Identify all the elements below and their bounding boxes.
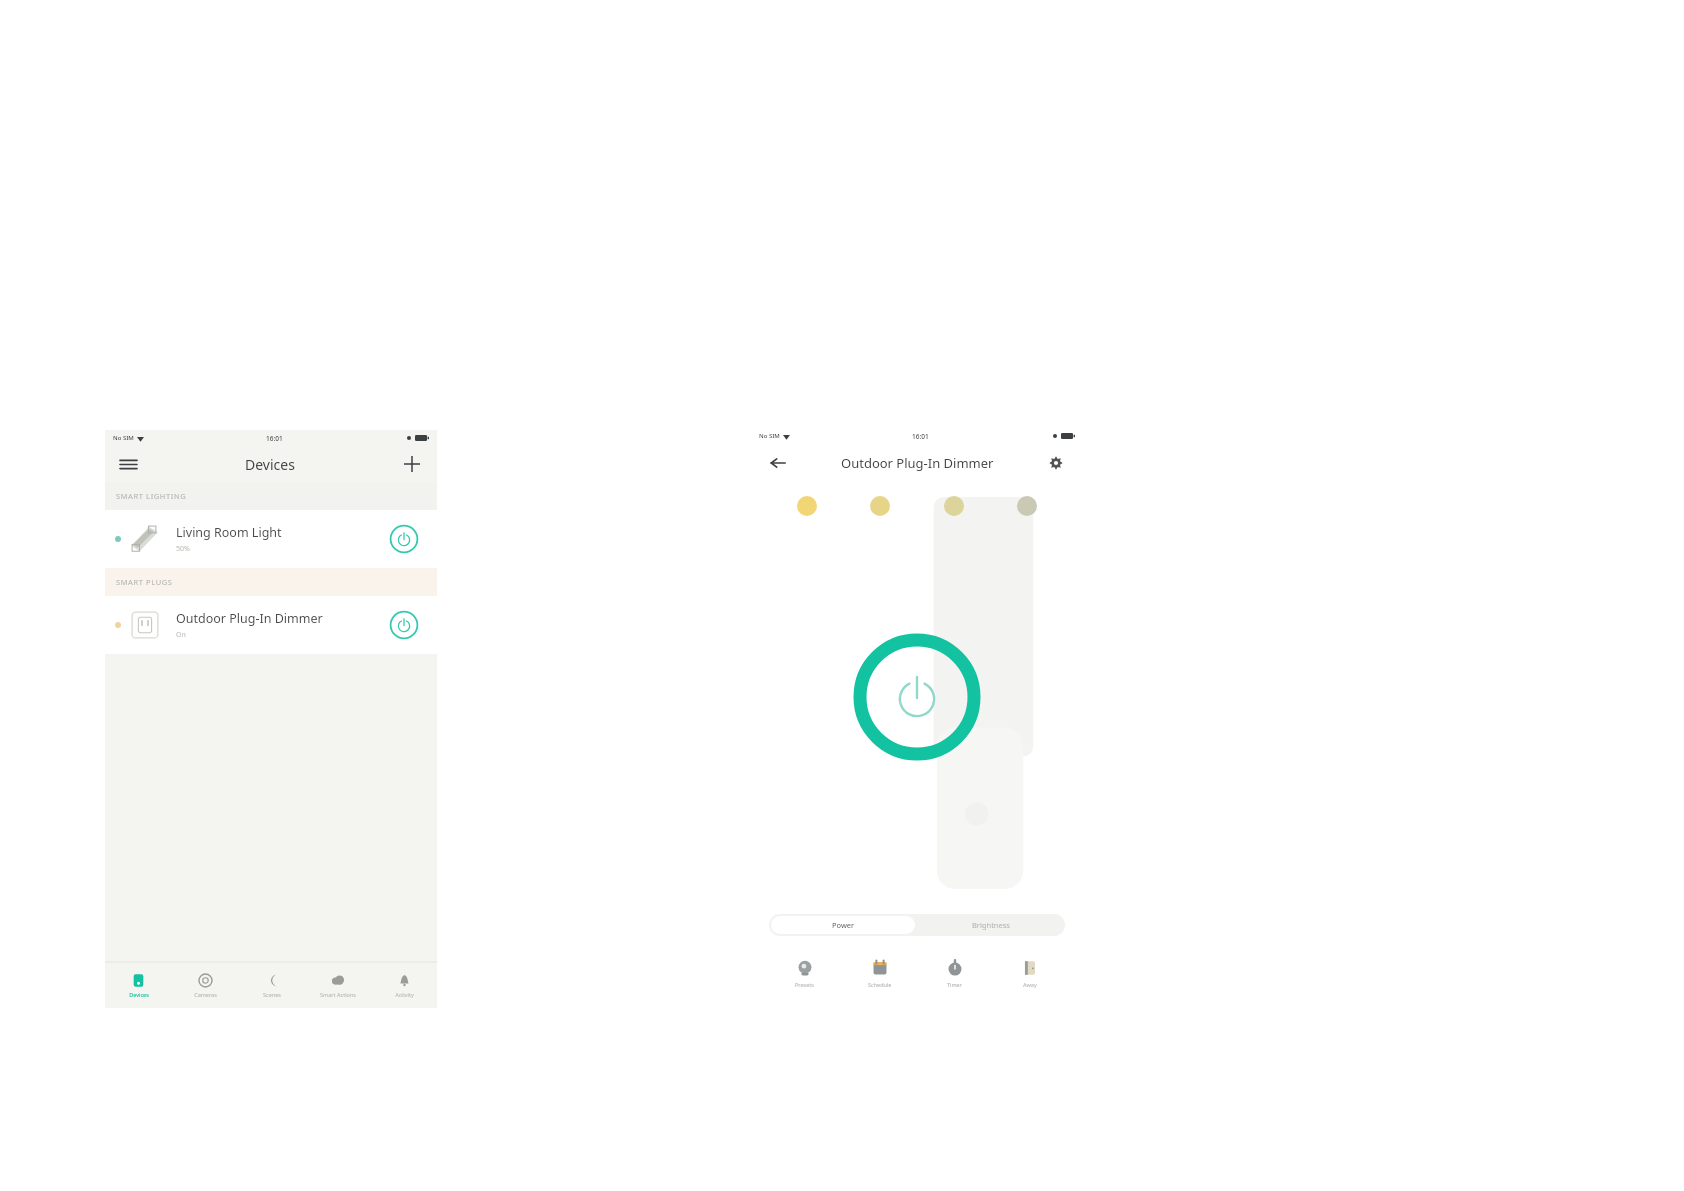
- staticText: Scenes: [263, 991, 281, 998]
- staticText: Devices: [245, 455, 295, 474]
- staticText: Cameras: [194, 991, 217, 998]
- button[interactable]: Timer: [917, 950, 992, 996]
- button[interactable]: Add device: [397, 449, 427, 479]
- staticText: 50%: [176, 544, 190, 554]
- staticText: Timer: [947, 981, 962, 988]
- staticText: Schedule: [868, 981, 892, 988]
- staticText: No SIM: [113, 434, 134, 442]
- button[interactable]: Outdoor Plug-In Dimmer: [105, 596, 437, 654]
- button[interactable]: Scenes: [239, 962, 305, 1008]
- button[interactable]: Menu: [113, 449, 143, 479]
- staticText: Brightness: [972, 920, 1010, 930]
- button[interactable]: Settings: [1041, 448, 1071, 478]
- staticText: Presets: [795, 981, 814, 988]
- staticText: 16:01: [266, 434, 283, 443]
- button[interactable]: Living Room Light: [105, 510, 437, 568]
- button[interactable]: Power: [853, 633, 981, 761]
- button[interactable]: Smart Actions: [305, 962, 371, 1008]
- button[interactable]: Devices: [105, 962, 172, 1008]
- button[interactable]: Presets: [767, 950, 842, 996]
- staticText: Away: [1023, 981, 1037, 988]
- staticText: Activity: [395, 991, 414, 998]
- staticText: On: [176, 630, 186, 640]
- button[interactable]: Brightness: [917, 914, 1065, 936]
- staticText: 16:01: [912, 432, 929, 441]
- staticText: Power: [832, 920, 855, 930]
- staticText: SMART PLUGS: [116, 577, 173, 587]
- button[interactable]: Schedule: [842, 950, 917, 996]
- staticText: Devices: [129, 991, 149, 998]
- staticText: Outdoor Plug-In Dimmer: [841, 454, 994, 472]
- staticText: No SIM: [759, 432, 780, 440]
- button[interactable]: Toggle Living Room Light: [387, 522, 421, 556]
- button[interactable]: Away: [992, 950, 1067, 996]
- staticText: SMART LIGHTING: [116, 491, 187, 501]
- staticText: Living Room Light: [176, 524, 282, 541]
- button[interactable]: Cameras: [172, 962, 239, 1008]
- button[interactable]: Back: [763, 448, 793, 478]
- staticText: Smart Actions: [320, 991, 356, 998]
- button[interactable]: Activity: [371, 962, 437, 1008]
- button[interactable]: Toggle Outdoor Plug-In Dimmer: [387, 608, 421, 642]
- staticText: Outdoor Plug-In Dimmer: [176, 610, 323, 627]
- button[interactable]: Power: [771, 916, 915, 934]
